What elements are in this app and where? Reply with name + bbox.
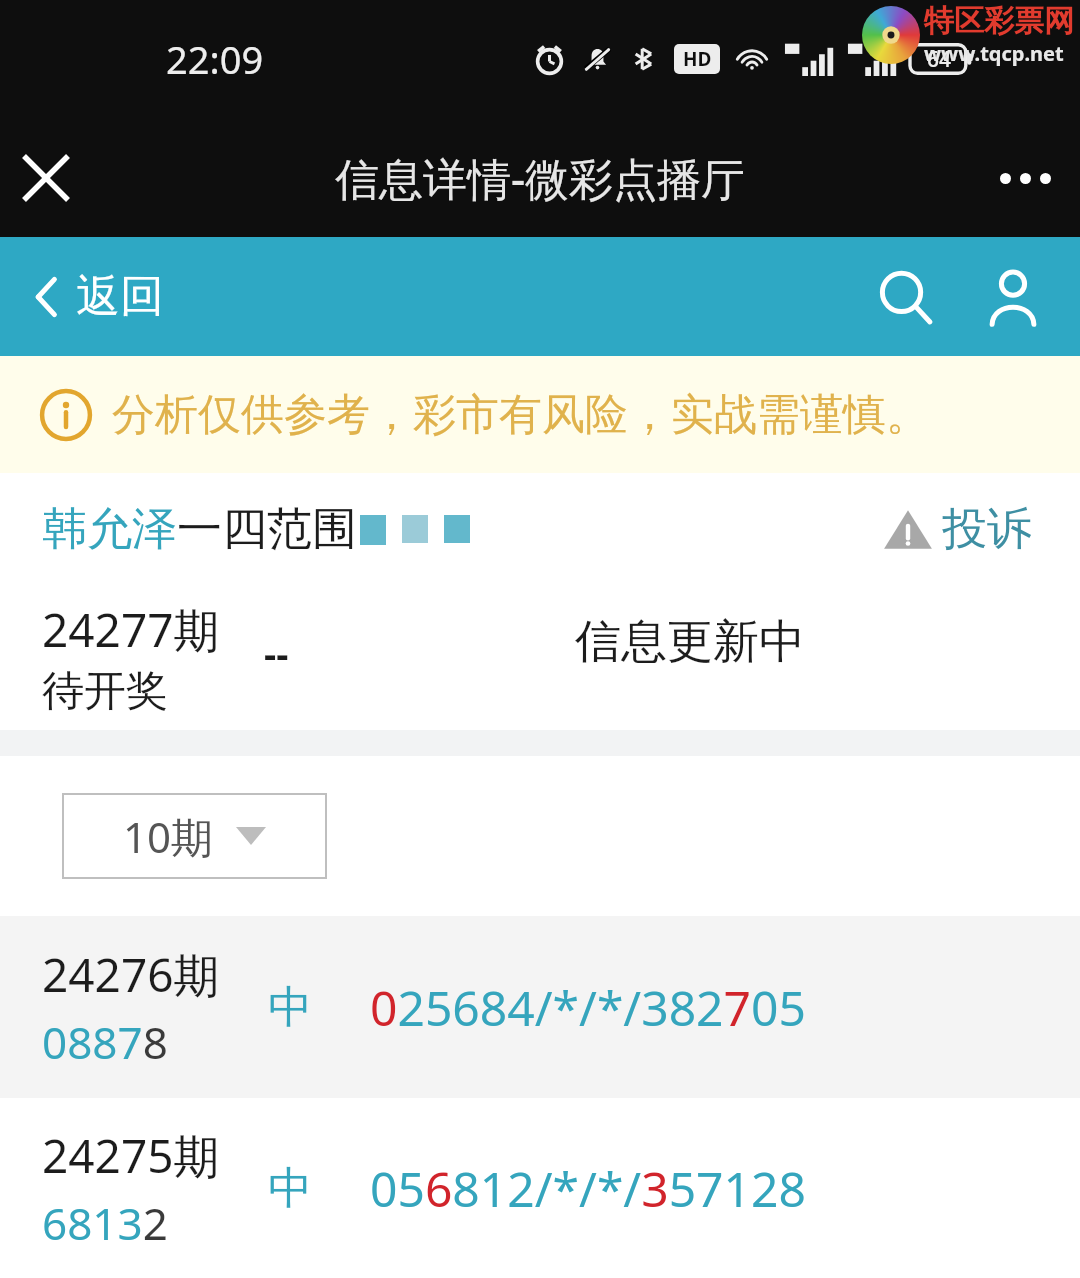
- staticText: HD: [683, 46, 712, 72]
- staticText: 025684/*/*/382705: [370, 975, 806, 1040]
- staticText: 24276期: [42, 943, 220, 1006]
- staticText: 特区彩票网: [924, 2, 1074, 40]
- staticText: www.tqcp.net: [924, 40, 1064, 67]
- staticText: 10期: [123, 808, 214, 865]
- staticText: 中: [268, 980, 312, 1035]
- staticText: 投诉: [942, 501, 1032, 558]
- button[interactable]: Search: [862, 254, 948, 340]
- staticText: 返回: [76, 269, 164, 324]
- staticText: 24275期: [42, 1124, 220, 1187]
- button[interactable]: 投诉: [876, 495, 1038, 564]
- staticText: 中: [268, 1161, 312, 1216]
- button[interactable]: 返回: [32, 261, 180, 332]
- button[interactable]: 24275期: [0, 1098, 1080, 1278]
- staticText: 信息详情-微彩点播厅: [335, 148, 746, 208]
- staticText: 待开奖: [42, 665, 168, 718]
- staticText: 22:09: [166, 33, 264, 85]
- staticText: --: [264, 627, 289, 679]
- button[interactable]: Profile: [970, 254, 1056, 340]
- staticText: 08878: [42, 1012, 168, 1072]
- staticText: 64: [927, 45, 952, 74]
- staticText: 分析仅供参考，彩市有风险，实战需谨慎。: [112, 388, 929, 442]
- staticText: 68132: [42, 1193, 168, 1253]
- staticText: 韩允泽一四范围: [42, 501, 357, 558]
- button[interactable]: Close: [0, 132, 92, 224]
- staticText: 056812/*/*/357128: [370, 1156, 806, 1221]
- button[interactable]: 24276期: [0, 916, 1080, 1098]
- staticText: 信息更新中: [575, 613, 805, 671]
- button[interactable]: More options: [970, 123, 1080, 233]
- button[interactable]: 10期: [62, 793, 327, 879]
- staticText: 24277期: [42, 598, 220, 661]
